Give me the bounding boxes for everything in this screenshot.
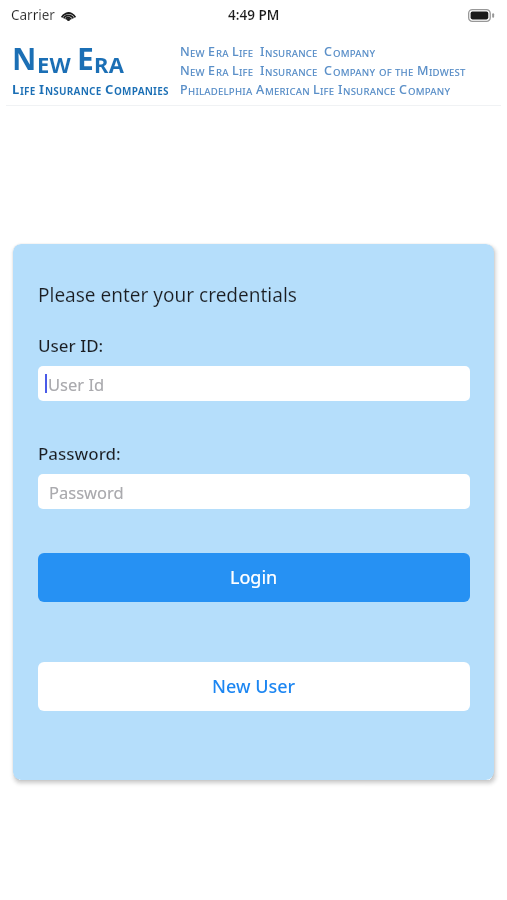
button[interactable]: New User bbox=[38, 662, 470, 711]
staticText: OF bbox=[379, 66, 392, 79]
staticText: N bbox=[180, 62, 190, 79]
staticText: I bbox=[260, 62, 265, 79]
staticText: E bbox=[208, 62, 216, 79]
staticText: 4:49 PM bbox=[228, 6, 280, 24]
staticText: NSURANCE bbox=[265, 66, 318, 79]
staticText: C bbox=[324, 62, 333, 79]
staticText: RA bbox=[216, 66, 229, 79]
staticText: C bbox=[399, 81, 408, 98]
staticText: NSURANCE bbox=[265, 47, 318, 60]
staticText: I bbox=[39, 80, 45, 98]
button[interactable]: User Id bbox=[38, 366, 470, 401]
staticText: New User bbox=[212, 674, 296, 699]
staticText: IFE bbox=[320, 85, 335, 98]
staticText: Password bbox=[49, 481, 124, 503]
staticText: IDWEST bbox=[429, 66, 466, 79]
staticText: Password: bbox=[38, 442, 121, 465]
staticText: Carrier bbox=[11, 6, 55, 24]
staticText: IFE bbox=[239, 66, 254, 79]
staticText: EW bbox=[190, 47, 205, 60]
staticText: EW bbox=[37, 49, 71, 79]
staticText: Please enter your credentials bbox=[38, 282, 297, 308]
staticText: L bbox=[232, 43, 239, 60]
staticText: E bbox=[208, 43, 216, 60]
staticText: E bbox=[77, 38, 94, 79]
staticText: C bbox=[324, 43, 333, 60]
staticText: User ID: bbox=[38, 334, 104, 357]
staticText: P bbox=[180, 81, 188, 98]
staticText: N bbox=[12, 38, 37, 79]
staticText: MERICAN bbox=[265, 85, 310, 98]
staticText: C bbox=[105, 80, 114, 98]
staticText: OMPANY bbox=[333, 66, 376, 79]
staticText: L bbox=[313, 81, 320, 98]
button[interactable]: Password bbox=[38, 474, 470, 509]
staticText: I bbox=[338, 81, 343, 98]
staticText: OMPANIES bbox=[114, 84, 169, 98]
staticText: THE bbox=[395, 66, 414, 79]
staticText: L bbox=[12, 80, 20, 98]
staticText: User Id bbox=[48, 373, 105, 395]
staticText: OMPANY bbox=[333, 47, 376, 60]
staticText: M bbox=[417, 62, 429, 79]
staticText: N bbox=[180, 43, 190, 60]
staticText: I bbox=[260, 43, 265, 60]
staticText: OMPANY bbox=[408, 85, 451, 98]
button[interactable]: Login bbox=[38, 553, 470, 602]
staticText: L bbox=[232, 62, 239, 79]
staticText: IFE bbox=[20, 84, 36, 98]
staticText: A bbox=[256, 81, 265, 98]
staticText: EW bbox=[190, 66, 205, 79]
staticText: RA bbox=[94, 49, 125, 79]
staticText: IFE bbox=[239, 47, 254, 60]
staticText: NSURANCE bbox=[343, 85, 396, 98]
staticText: Login bbox=[230, 565, 278, 590]
staticText: RA bbox=[216, 47, 229, 60]
staticText: HILADELPHIA bbox=[188, 85, 253, 98]
staticText: NSURANCE bbox=[45, 84, 102, 98]
